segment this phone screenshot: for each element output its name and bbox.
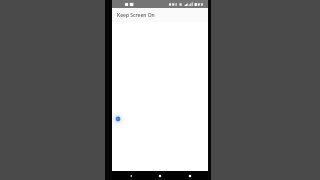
button[interactable] bbox=[112, 22, 208, 171]
button[interactable]: Back bbox=[120, 171, 142, 180]
button[interactable]: Home bbox=[149, 171, 171, 180]
button[interactable]: Keep Screen On bbox=[112, 8, 208, 22]
button[interactable]: Recent apps bbox=[179, 171, 201, 180]
staticText: Keep Screen On bbox=[117, 12, 155, 19]
